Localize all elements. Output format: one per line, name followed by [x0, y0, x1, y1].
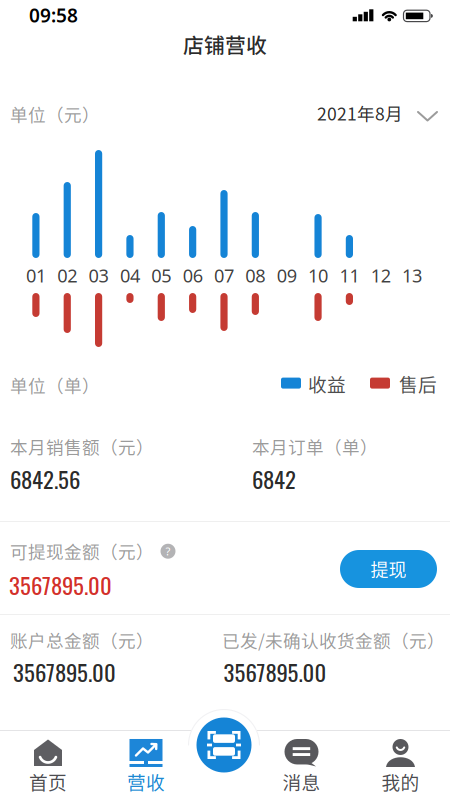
- staticText: ?: [165, 543, 170, 559]
- staticText: 11: [339, 263, 359, 288]
- staticText: 09: [277, 263, 297, 288]
- staticText: 13: [402, 263, 422, 288]
- button[interactable]: 首页: [16, 737, 80, 797]
- staticText: 3567895.00: [13, 655, 116, 689]
- staticText: 提现: [370, 556, 406, 582]
- staticText: 营收: [127, 768, 165, 795]
- staticText: 10: [308, 263, 328, 288]
- staticText: 售后: [399, 370, 437, 397]
- staticText: 单位（单）: [10, 372, 100, 397]
- staticText: 可提现金额（元）: [10, 538, 154, 563]
- staticText: 12: [371, 263, 391, 288]
- staticText: 3567895.00: [223, 655, 326, 689]
- button[interactable]: 2021年8月: [317, 100, 437, 125]
- staticText: 本月销售额（元）: [10, 433, 154, 459]
- staticText: 3567895.00: [9, 568, 112, 602]
- button[interactable]: 消息: [269, 737, 333, 797]
- staticText: 我的: [381, 768, 419, 795]
- staticText: 收益: [308, 370, 346, 397]
- staticText: 账户总金额（元）: [10, 627, 154, 652]
- button[interactable]: 说明: [160, 543, 175, 559]
- staticText: 6842.56: [10, 462, 80, 496]
- staticText: 06: [183, 263, 203, 288]
- button[interactable]: 营收: [114, 737, 178, 797]
- staticText: 已发/未确认收货金额（元）: [222, 627, 445, 652]
- staticText: 08: [245, 263, 265, 288]
- staticText: 单位（元）: [10, 101, 100, 126]
- button[interactable]: 提现: [340, 550, 437, 588]
- staticText: 02: [57, 263, 77, 288]
- button[interactable]: 扫描: [194, 715, 254, 775]
- staticText: 6842: [252, 462, 296, 496]
- staticText: 2021年8月: [317, 100, 403, 125]
- staticText: 04: [120, 263, 140, 288]
- staticText: 07: [214, 263, 234, 288]
- staticText: 03: [89, 263, 109, 288]
- staticText: 05: [151, 263, 171, 288]
- staticText: 店铺营收: [183, 29, 267, 59]
- staticText: 消息: [282, 768, 320, 795]
- button[interactable]: 我的: [368, 737, 432, 797]
- staticText: 本月订单（单）: [252, 433, 378, 459]
- staticText: 09:58: [29, 2, 78, 28]
- staticText: 01: [26, 263, 46, 288]
- staticText: 首页: [29, 768, 67, 795]
